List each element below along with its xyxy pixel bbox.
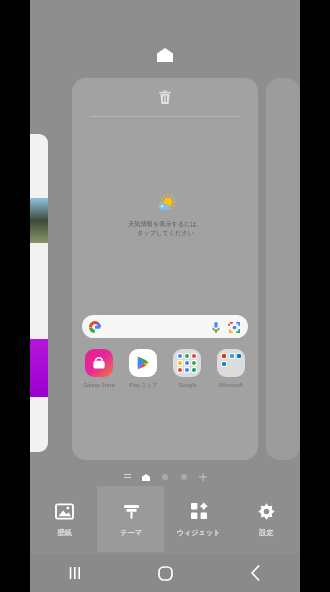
staticText: Play ストア bbox=[129, 381, 158, 388]
staticText: Microsoft bbox=[219, 381, 243, 388]
staticText: 天気情報を表示するには、 bbox=[128, 220, 203, 228]
button[interactable]: 設定 bbox=[232, 486, 300, 552]
staticText: 設定 bbox=[259, 528, 274, 537]
button[interactable]: 壁紙 bbox=[30, 486, 97, 552]
button[interactable]: Home bbox=[120, 554, 210, 592]
button[interactable]: Microsoft bbox=[210, 348, 252, 388]
staticText: 壁紙 bbox=[57, 528, 72, 537]
staticText: タップしてください bbox=[137, 229, 194, 237]
button[interactable]: Page bbox=[177, 470, 191, 484]
button[interactable]: Home page bbox=[152, 42, 178, 68]
button[interactable]: テーマ bbox=[97, 486, 164, 552]
button[interactable]: Page bbox=[158, 470, 172, 484]
button[interactable]: 天気情報を表示するには、 bbox=[72, 117, 258, 315]
button[interactable]: Back bbox=[210, 554, 300, 592]
button[interactable]: Add page bbox=[196, 470, 210, 484]
button[interactable]: Home page 1 bbox=[139, 470, 153, 484]
staticText: テーマ bbox=[120, 528, 142, 537]
button[interactable]: Play ストア bbox=[122, 348, 164, 388]
button[interactable]: Galaxy Store bbox=[78, 348, 120, 388]
button[interactable]: ウィジェット bbox=[164, 486, 232, 552]
button[interactable]: Recents bbox=[30, 554, 120, 592]
staticText: Galaxy Store bbox=[83, 381, 115, 388]
button[interactable]: Page list bbox=[120, 470, 134, 484]
staticText: Google bbox=[178, 381, 197, 388]
button[interactable]: Google bbox=[166, 348, 208, 388]
button[interactable]: Remove page bbox=[150, 82, 180, 112]
button[interactable] bbox=[82, 315, 248, 338]
staticText: ウィジェット bbox=[176, 528, 221, 537]
